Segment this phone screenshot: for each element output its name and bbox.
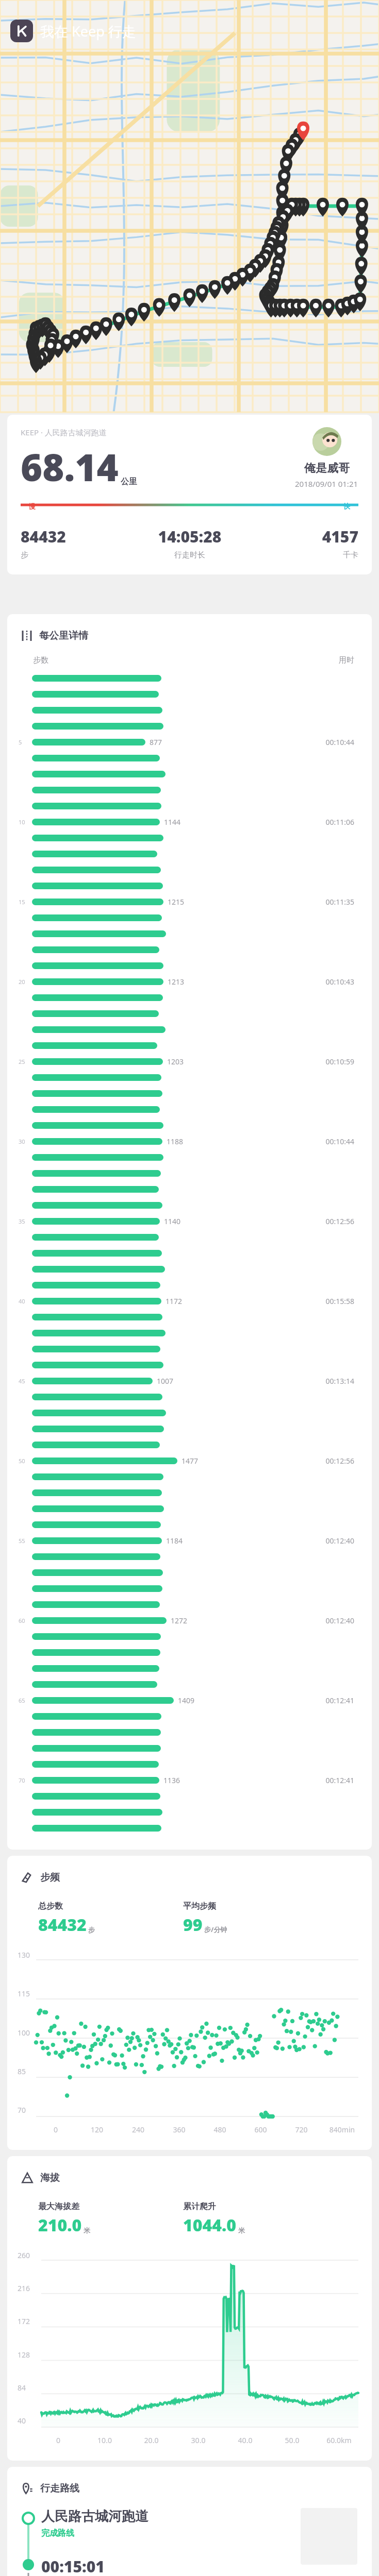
- staticText: 1144: [164, 817, 181, 827]
- staticText: 1272: [171, 1616, 188, 1625]
- staticText: 1007: [157, 1376, 174, 1386]
- staticText: 1184: [166, 1536, 183, 1546]
- staticText: 1203: [167, 1057, 184, 1066]
- staticText: 45: [19, 1377, 25, 1385]
- staticText: 步数: [33, 655, 48, 665]
- staticText: 100: [18, 2028, 30, 2038]
- staticText: 50.0: [269, 2435, 316, 2445]
- staticText: 1188: [167, 1137, 184, 1146]
- staticText: 65: [19, 1697, 25, 1704]
- staticText: 00:12:41: [312, 1696, 354, 1705]
- staticText: 00:12:40: [312, 1616, 354, 1625]
- staticText: 米: [238, 2226, 245, 2234]
- staticText: 1172: [166, 1296, 183, 1306]
- staticText: 30: [19, 1138, 25, 1145]
- staticText: 1409: [178, 1696, 195, 1705]
- staticText: 海拔: [40, 2172, 60, 2184]
- staticText: 累计爬升: [183, 2201, 216, 2212]
- staticText: 40: [18, 2416, 26, 2426]
- staticText: 00:10:43: [312, 977, 354, 987]
- staticText: 600: [240, 2125, 281, 2134]
- staticText: 公里: [121, 477, 137, 487]
- staticText: 85: [18, 2066, 26, 2076]
- staticText: 00:12:56: [312, 1216, 354, 1226]
- staticText: 0: [35, 2435, 81, 2445]
- staticText: 70: [18, 2105, 26, 2115]
- staticText: 1044.0: [183, 2214, 237, 2236]
- staticText: 2018/09/01 01:21: [295, 479, 358, 489]
- staticText: 1477: [182, 1456, 199, 1466]
- staticText: 128: [18, 2350, 30, 2360]
- staticText: 40.0: [222, 2435, 269, 2445]
- staticText: 99: [183, 1913, 203, 1936]
- staticText: 00:12:41: [312, 1775, 354, 1785]
- staticText: 70: [19, 1776, 25, 1784]
- staticText: 00:12:56: [312, 1456, 354, 1466]
- staticText: 877: [150, 737, 162, 747]
- staticText: KEEP · 人民路古城河跑道: [21, 427, 107, 437]
- staticText: 0: [35, 2125, 76, 2134]
- staticText: 行走时长: [134, 550, 246, 560]
- staticText: 84432: [38, 1913, 87, 1936]
- staticText: 10: [19, 818, 25, 826]
- staticText: 360: [159, 2125, 200, 2134]
- staticText: 840min: [322, 2125, 362, 2134]
- staticText: 步: [21, 550, 134, 560]
- staticText: 240: [118, 2125, 159, 2134]
- staticText: 00:10:59: [312, 1057, 354, 1066]
- staticText: 1215: [168, 897, 185, 907]
- staticText: 每公里详情: [39, 630, 88, 642]
- staticText: 68.14: [21, 442, 119, 492]
- staticText: 50: [19, 1457, 25, 1465]
- staticText: 55: [19, 1537, 25, 1545]
- staticText: 30.0: [175, 2435, 222, 2445]
- staticText: 84432: [21, 526, 134, 547]
- staticText: 172: [18, 2316, 30, 2326]
- staticText: 60: [19, 1617, 25, 1624]
- staticText: 130: [18, 1950, 30, 1960]
- staticText: 00:11:06: [312, 817, 354, 827]
- staticText: 40: [19, 1297, 25, 1305]
- staticText: 15: [19, 898, 25, 906]
- staticText: 210.0: [38, 2214, 82, 2236]
- staticText: 260: [18, 2250, 30, 2260]
- staticText: 行走路线: [40, 2482, 79, 2495]
- staticText: 米: [84, 2226, 90, 2234]
- staticText: 60.0km: [316, 2435, 362, 2445]
- staticText: 人民路古城河跑道: [41, 2508, 149, 2525]
- staticText: 慢: [29, 502, 36, 510]
- staticText: 5: [19, 738, 22, 746]
- staticText: 4157: [246, 526, 358, 547]
- staticText: 步/分钟: [204, 1925, 227, 1934]
- staticText: 00:15:58: [312, 1296, 354, 1306]
- staticText: 10.0: [81, 2435, 128, 2445]
- staticText: 俺是威哥: [304, 461, 350, 476]
- staticText: 最大海拔差: [38, 2201, 79, 2212]
- staticText: 00:11:35: [312, 897, 354, 907]
- staticText: 480: [200, 2125, 240, 2134]
- staticText: 720: [281, 2125, 322, 2134]
- staticText: 步: [88, 1926, 95, 1934]
- staticText: 84: [18, 2383, 26, 2393]
- staticText: 完成路线: [41, 2528, 74, 2538]
- staticText: 00:10:44: [312, 737, 354, 747]
- staticText: 步频: [40, 1871, 60, 1884]
- staticText: 我在 Keep 行走: [40, 22, 136, 41]
- staticText: 20.0: [128, 2435, 175, 2445]
- staticText: 00:12:40: [312, 1536, 354, 1546]
- staticText: 平均步频: [183, 1901, 216, 1911]
- staticText: 115: [18, 1989, 30, 1998]
- staticText: 14:05:28: [134, 526, 246, 547]
- staticText: 216: [18, 2283, 30, 2293]
- staticText: 00:10:44: [312, 1137, 354, 1146]
- staticText: 千卡: [246, 550, 358, 560]
- staticText: 1213: [168, 977, 185, 987]
- staticText: 快: [343, 502, 350, 510]
- staticText: 35: [19, 1217, 25, 1225]
- staticText: 用时: [339, 655, 354, 665]
- staticText: 00:15:01: [41, 2556, 105, 2576]
- staticText: 总步数: [38, 1901, 63, 1911]
- staticText: 1140: [164, 1216, 181, 1226]
- staticText: 25: [19, 1058, 25, 1065]
- staticText: 00:13:14: [312, 1376, 354, 1386]
